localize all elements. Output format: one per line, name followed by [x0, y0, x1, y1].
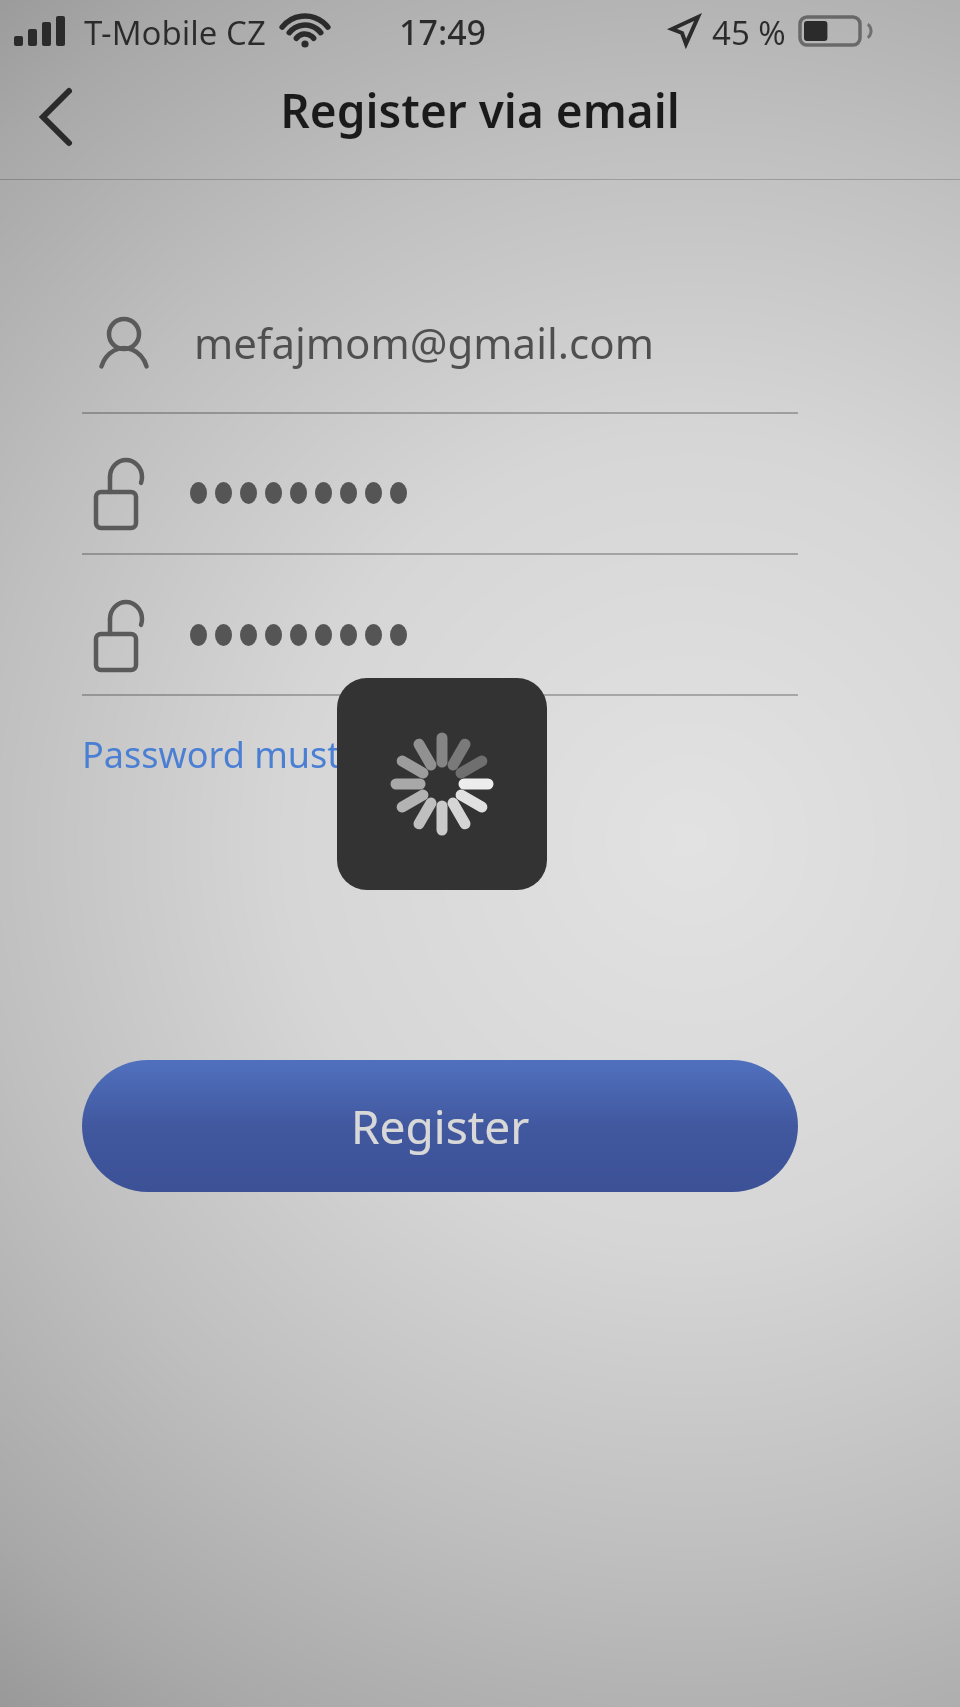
staticText: Register	[351, 1095, 530, 1158]
staticText: 45 %	[712, 10, 786, 55]
button[interactable]: Back	[8, 62, 104, 172]
button[interactable]: mefajmom@gmail.com	[82, 290, 798, 412]
button[interactable]: Password must be 8-30 characters,contain…	[82, 730, 812, 779]
button[interactable]	[82, 586, 798, 694]
staticText: mefajmom@gmail.com	[194, 314, 654, 371]
staticText: T-Mobile CZ	[84, 10, 266, 55]
button[interactable]: Register	[82, 1060, 798, 1192]
button[interactable]	[82, 444, 798, 552]
staticText: Register via email	[280, 79, 680, 142]
staticText: 17:49	[399, 9, 487, 55]
